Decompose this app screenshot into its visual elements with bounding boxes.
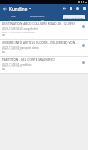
staticText: Kundine <box>9 6 28 12</box>
button[interactable]: More options <box>82 6 87 11</box>
staticText: Sendungen/Bestellungen fur Kunden <box>30 14 54 17</box>
button[interactable]: Back <box>2 6 8 12</box>
staticText: PARTITION - GEL CONTE MAGNIFICI <box>2 58 55 62</box>
button[interactable]: UNSERE INFO ARTICLE FLOORS - DELIVERIED … <box>0 40 88 56</box>
staticText: 2023-11-08 00 transport daten <box>2 46 40 50</box>
button[interactable]: Details <box>81 60 85 64</box>
button[interactable]: PARTITION - GEL CONTE MAGNIFICI <box>0 57 88 73</box>
staticText: DESTINATION ABCD COLLSERS ROAD 28 - 12.0… <box>2 22 75 26</box>
staticText: 2023-11-08 00:41 ausgeliefert <box>2 27 39 31</box>
staticText: 20 <box>41 18 44 21</box>
button[interactable]: Export <box>62 6 67 11</box>
staticText: 2023-11-08 Status <box>2 47 23 50</box>
button[interactable]: Details <box>81 43 85 47</box>
staticText: 1 von 1448 <box>10 18 16 21</box>
staticText: Mehr Sendungen <box>64 16 84 19</box>
button[interactable]: Details <box>81 24 85 28</box>
staticText: Alle <box>11 14 16 17</box>
button[interactable]: Mehr Sendungen <box>63 15 85 19</box>
button[interactable]: Refresh <box>75 6 80 11</box>
button[interactable]: Document <box>68 6 73 11</box>
staticText: UNSERE INFO ARTICLE FLOORS - DELIVERIED … <box>2 41 78 45</box>
staticText: 2023-11-08 Status aktualisiert <box>2 30 36 33</box>
staticText: 2023-11-08 05 condition <box>2 63 32 67</box>
button[interactable]: DESTINATION ABCD COLLSERS ROAD 28 - 12.0… <box>0 21 88 39</box>
staticText: 2023-11-08 Status <box>2 64 23 67</box>
